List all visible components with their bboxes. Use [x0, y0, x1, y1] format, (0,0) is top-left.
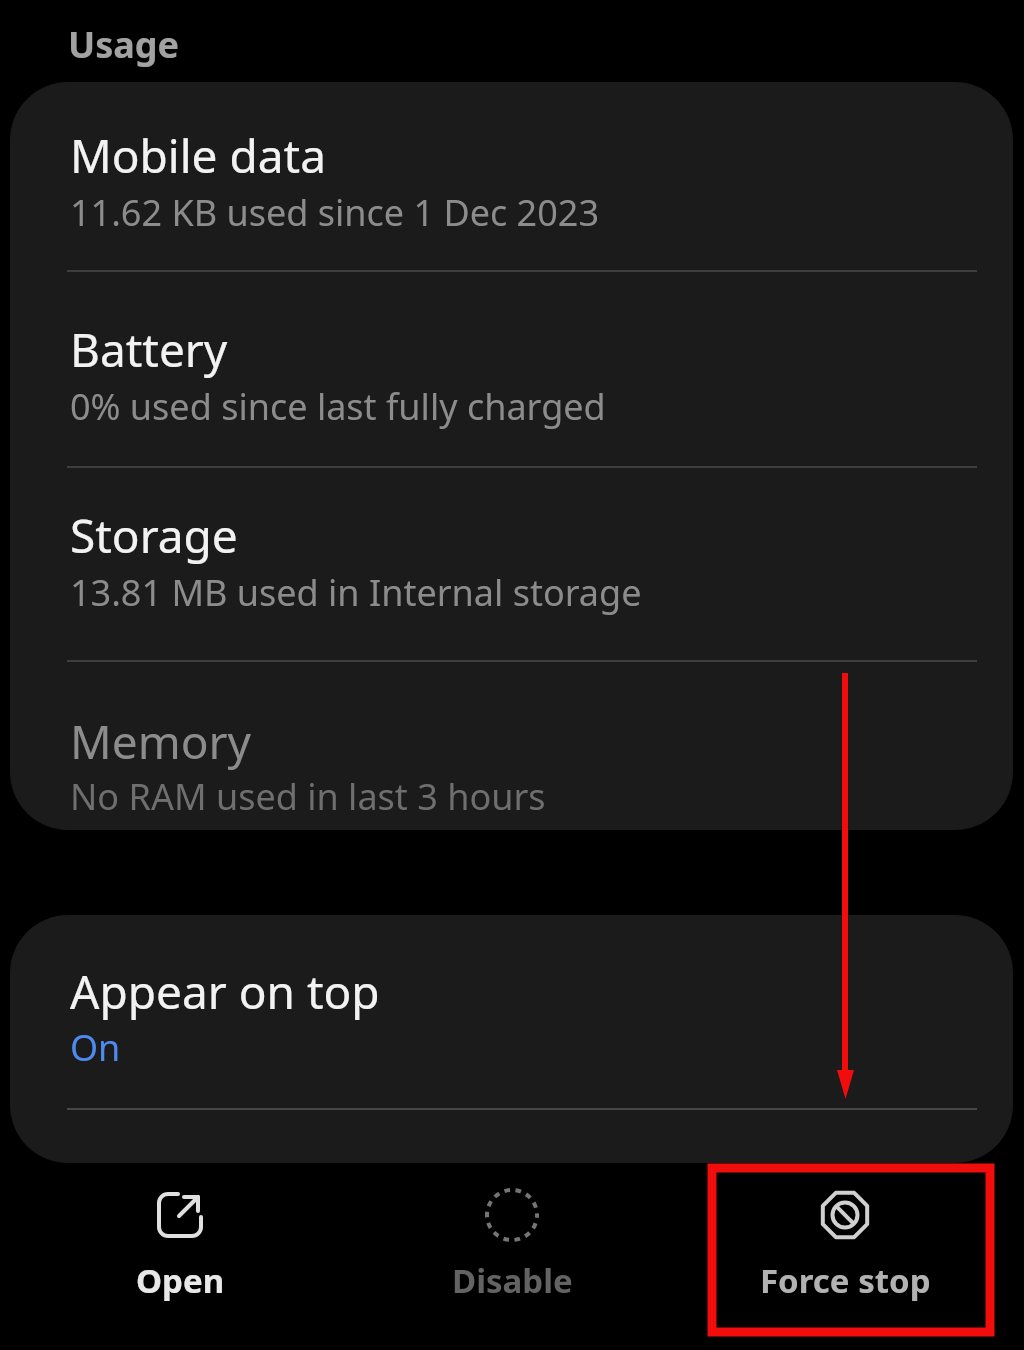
- staticText: Disable: [452, 1258, 573, 1303]
- button[interactable]: [10, 272, 1013, 468]
- staticText: Open: [136, 1258, 225, 1303]
- staticText: Storage: [70, 504, 238, 567]
- staticText: On: [70, 1023, 121, 1072]
- button[interactable]: Disable: [372, 1172, 652, 1330]
- button[interactable]: Force stop: [705, 1172, 985, 1330]
- button[interactable]: [10, 468, 1013, 662]
- staticText: Memory: [70, 710, 251, 773]
- staticText: 13.81 MB used in Internal storage: [70, 568, 642, 617]
- staticText: Force stop: [760, 1258, 931, 1303]
- staticText: Battery: [70, 318, 228, 381]
- staticText: No RAM used in last 3 hours: [70, 772, 546, 821]
- button[interactable]: Appear on top: [10, 915, 1013, 1163]
- staticText: 0% used since last fully charged: [70, 382, 606, 431]
- button[interactable]: Open: [40, 1172, 320, 1330]
- staticText: Usage: [68, 20, 180, 69]
- staticText: 11.62 KB used since 1 Dec 2023: [70, 188, 599, 237]
- button[interactable]: [10, 82, 1013, 272]
- staticText: Mobile data: [70, 124, 326, 187]
- staticText: Appear on top: [70, 960, 380, 1023]
